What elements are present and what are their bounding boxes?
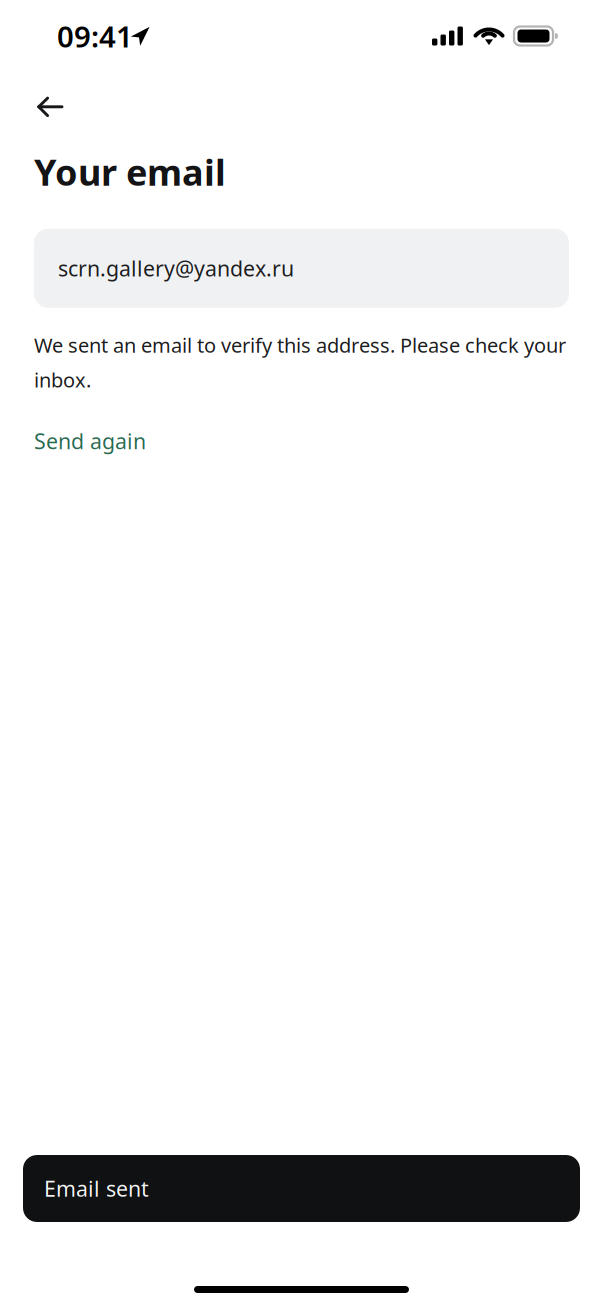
staticText: Send again	[34, 427, 146, 455]
staticText: We sent an email to verify this address.…	[34, 332, 566, 393]
staticText: Your email	[34, 148, 226, 196]
staticText: Email sent	[44, 1174, 149, 1203]
staticText: 09:41	[57, 16, 133, 55]
button[interactable]: Back	[0, 79, 85, 135]
button[interactable]: Send again	[0, 393, 180, 465]
staticText: scrn.gallery@yandex.ru	[58, 254, 294, 282]
